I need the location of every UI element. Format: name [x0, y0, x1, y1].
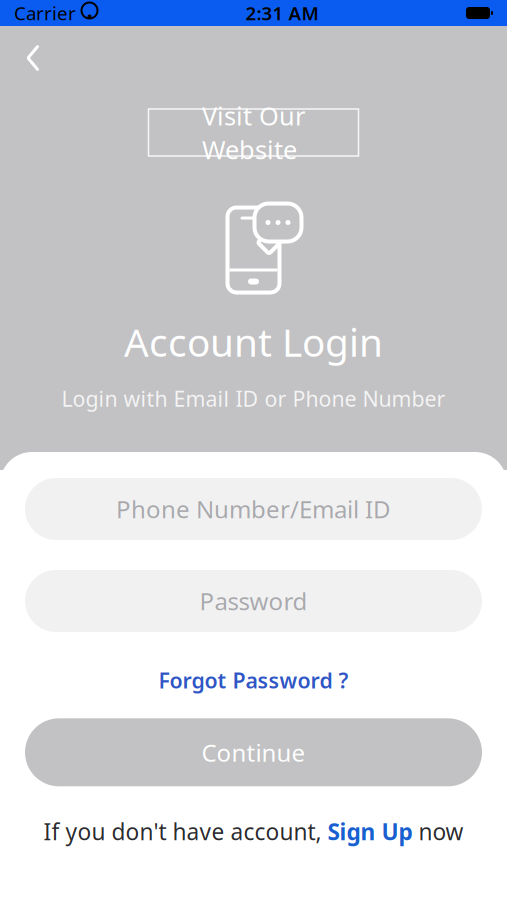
- staticText: Carrier: [14, 1, 76, 25]
- staticText: Password: [199, 585, 307, 617]
- button[interactable]: If you don't have account,: [43, 810, 463, 852]
- staticText: Login with Email ID or Phone Number: [61, 384, 445, 413]
- button[interactable]: Phone Number/Email ID: [25, 478, 482, 540]
- button[interactable]: Forgot Password ?: [148, 660, 358, 700]
- button[interactable]: Password: [25, 570, 482, 632]
- button[interactable]: Visit Our Website: [148, 109, 358, 156]
- staticText: 2:31 AM: [245, 1, 318, 25]
- staticText: Phone Number/Email ID: [116, 493, 391, 525]
- staticText: Sign Up: [327, 816, 412, 846]
- staticText: Account Login: [124, 316, 383, 367]
- staticText: now: [412, 816, 463, 846]
- staticText: Visit Our Website: [202, 99, 305, 166]
- staticText: Continue: [201, 736, 305, 768]
- button[interactable]: Continue: [25, 718, 482, 786]
- staticText: Forgot Password ?: [158, 666, 348, 694]
- staticText: If you don't have account,: [43, 816, 327, 846]
- button[interactable]: Back: [0, 35, 58, 81]
